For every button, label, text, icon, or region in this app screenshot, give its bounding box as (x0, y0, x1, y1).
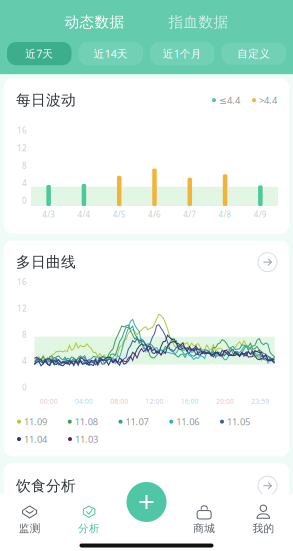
staticText: 11.06 (176, 415, 199, 428)
staticText: 监测 (19, 522, 41, 535)
staticText: 20:00 (216, 397, 234, 405)
staticText: 4/4 (77, 209, 90, 220)
staticText: 商城 (193, 522, 215, 535)
button[interactable]: 近1个月 (150, 42, 214, 65)
staticText: 04:00 (75, 397, 93, 405)
staticText: 12:00 (145, 397, 163, 405)
staticText: 近14天 (94, 46, 128, 61)
button[interactable]: 分析 (59, 505, 118, 535)
staticText: 指血数据 (168, 13, 228, 31)
staticText: 8 (22, 160, 27, 171)
staticText: 动态数据 (64, 13, 124, 31)
button[interactable]: 饮食分析详情 (258, 476, 277, 495)
staticText: 00:00 (40, 397, 58, 405)
staticText: 11.08 (75, 415, 98, 428)
staticText: >4.4 (259, 94, 277, 106)
staticText: 4/9 (254, 209, 267, 220)
button[interactable]: 近7天 (7, 42, 71, 65)
staticText: 4/5 (113, 209, 126, 220)
staticText: 4/7 (183, 209, 196, 220)
staticText: 11.07 (125, 415, 148, 428)
staticText: 分析 (78, 522, 100, 535)
staticText: 自定义 (237, 47, 270, 60)
staticText: 0 (22, 195, 27, 206)
staticText: 8 (22, 329, 27, 340)
staticText: 11.05 (227, 415, 250, 428)
staticText: 16 (17, 277, 27, 287)
button[interactable]: 多日曲线详情 (258, 253, 277, 272)
staticText: 08:00 (110, 397, 128, 405)
button[interactable]: 近14天 (78, 42, 143, 65)
staticText: 4/6 (148, 209, 161, 220)
staticText: 我的 (252, 522, 274, 535)
staticText: 4 (22, 356, 27, 366)
staticText: 12 (17, 143, 27, 153)
staticText: 近1个月 (163, 46, 202, 61)
staticText: ≤4.4 (219, 94, 240, 106)
staticText: 11.09 (24, 415, 47, 428)
staticText: 16 (17, 125, 27, 136)
button[interactable]: 我的 (234, 505, 293, 535)
staticText: 12 (17, 303, 27, 314)
button[interactable]: 添加 (126, 482, 166, 522)
staticText: 4/3 (42, 209, 55, 220)
staticText: 多日曲线 (16, 253, 76, 271)
button[interactable]: 指血数据 (158, 10, 238, 34)
staticText: 16:00 (181, 397, 199, 405)
button[interactable]: 监测 (0, 505, 59, 535)
button[interactable]: 自定义 (221, 42, 286, 65)
staticText: 近7天 (25, 46, 53, 61)
staticText: 每日波动 (16, 91, 76, 109)
staticText: 4/8 (219, 209, 232, 220)
staticText: 0 (22, 382, 27, 393)
staticText: 11.03 (75, 433, 98, 445)
staticText: 23:59 (251, 397, 269, 405)
button[interactable]: 商城 (174, 505, 234, 535)
staticText: 4 (22, 178, 27, 188)
button[interactable]: 动态数据 (54, 10, 134, 34)
staticText: 饮食分析 (16, 477, 76, 495)
staticText: 11.04 (24, 433, 47, 445)
